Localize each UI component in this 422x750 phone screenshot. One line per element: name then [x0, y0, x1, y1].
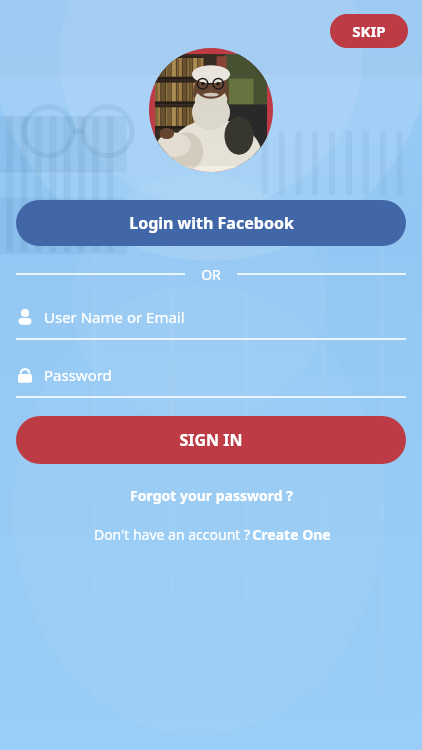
staticText: User Name or Email: [44, 307, 185, 327]
button[interactable]: SKIP: [330, 14, 408, 48]
staticText: OR: [201, 265, 221, 284]
button[interactable]: User name: [16, 304, 406, 340]
staticText: Don't have an account ?: [92, 525, 252, 544]
staticText: Login with Facebook: [129, 212, 294, 234]
staticText: Password: [44, 365, 112, 385]
staticText: SIGN IN: [179, 429, 243, 451]
other: Password: [16, 366, 34, 384]
button[interactable]: Forgot your password ?: [120, 480, 303, 511]
other: User name: [16, 308, 34, 326]
button[interactable]: SIGN IN: [16, 416, 406, 464]
button[interactable]: Password: [16, 362, 406, 398]
staticText: Forgot your password ?: [130, 486, 293, 505]
button[interactable]: Login with Facebook: [16, 200, 406, 246]
staticText: SKIP: [352, 21, 386, 41]
button[interactable]: Don't have an account ?: [82, 521, 341, 548]
button[interactable]: Profile photo: [149, 48, 273, 172]
staticText: Create One: [252, 525, 331, 544]
